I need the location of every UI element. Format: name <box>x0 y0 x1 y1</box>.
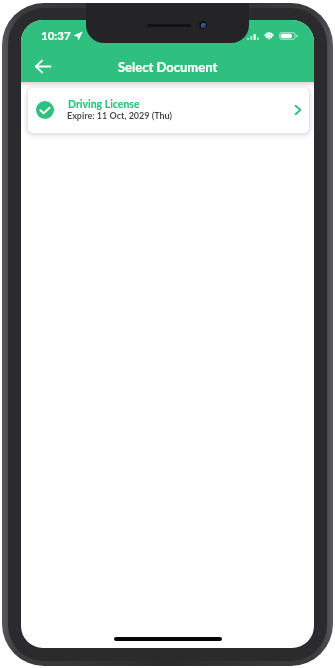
staticText: Expire: 11 Oct, 2029 (Thu) <box>67 110 173 121</box>
button[interactable]: Back <box>27 50 59 82</box>
staticText: Select Document <box>118 59 218 75</box>
button[interactable]: Driving License <box>28 88 309 133</box>
staticText: 10:37 <box>41 29 71 43</box>
staticText: Driving License <box>68 98 140 111</box>
